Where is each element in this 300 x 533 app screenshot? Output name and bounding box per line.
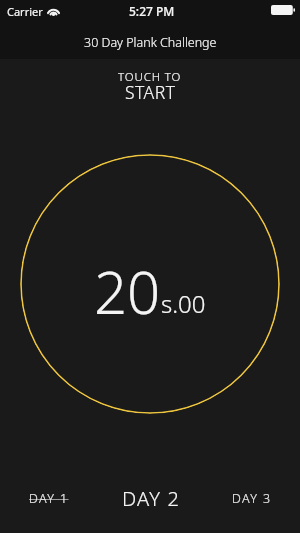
staticText: DAY 1 — [29, 490, 69, 507]
button[interactable]: DAY 1 — [0, 483, 100, 513]
staticText: START — [125, 80, 176, 104]
staticText: 5:27 PM — [129, 3, 175, 19]
button[interactable]: Start timer — [20, 154, 280, 414]
staticText: 20 — [94, 252, 161, 331]
button[interactable]: DAY 3 — [200, 483, 300, 513]
staticText: Carrier — [7, 4, 43, 19]
staticText: TOUCH TO — [118, 69, 182, 85]
staticText: 30 Day Plank Challenge — [84, 34, 217, 51]
staticText: DAY 3 — [232, 490, 272, 507]
button[interactable]: DAY 2 — [100, 483, 200, 513]
staticText: s.00 — [161, 287, 206, 320]
staticText: DAY 2 — [122, 485, 181, 512]
